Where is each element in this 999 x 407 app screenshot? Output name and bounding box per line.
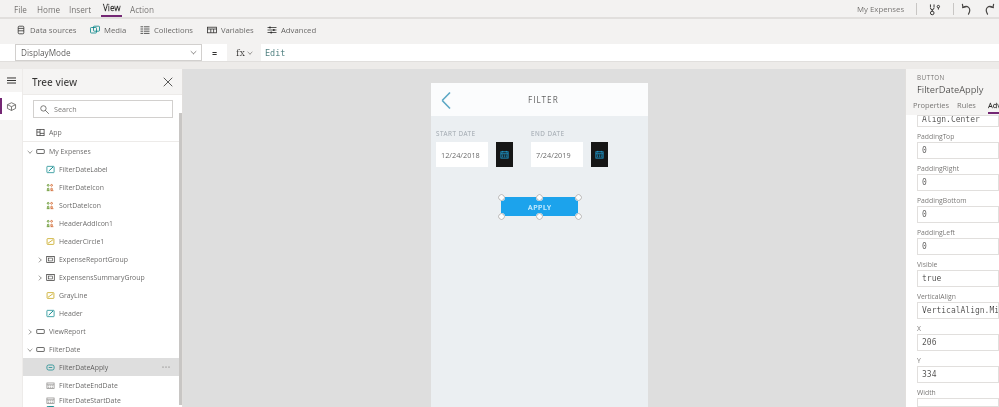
button[interactable]: VerticalAlign.Middle — [917, 302, 999, 319]
staticText: Header — [59, 309, 83, 318]
staticText: VerticalAlign.Middle — [922, 306, 999, 315]
button[interactable]: My Expenses — [853, 4, 909, 15]
button[interactable]: My Expenses — [22, 142, 183, 160]
button[interactable]: Search — [33, 100, 173, 118]
button[interactable]: Undo — [954, 0, 979, 18]
button[interactable]: Properties — [913, 100, 957, 114]
button[interactable]: App — [22, 123, 183, 141]
staticText: PaddingBottom — [917, 196, 967, 205]
button[interactable]: App checker — [917, 0, 953, 18]
staticText: 0 — [922, 178, 927, 187]
staticText: Media — [104, 25, 127, 35]
staticText: Adv — [988, 100, 999, 110]
button[interactable]: Header — [22, 304, 183, 322]
button[interactable]: Action — [126, 0, 159, 18]
staticText: 12/24/2018 — [441, 150, 480, 160]
button[interactable]: FilterDateEndDate — [22, 376, 183, 394]
staticText: HeaderAddIcon1 — [59, 219, 114, 228]
staticText: 0 — [922, 242, 927, 251]
staticText: Width — [917, 388, 936, 397]
button[interactable]: 12/24/2018 — [436, 142, 488, 167]
staticText: FilterDate — [49, 345, 81, 354]
staticText: Tree view — [32, 75, 78, 89]
button[interactable]: ViewReport — [22, 322, 183, 340]
button[interactable]: Tree view — [0, 92, 22, 120]
staticText: FilterDateEndDate — [59, 381, 118, 390]
staticText: APPLY — [528, 202, 552, 212]
staticText: Align.Center — [922, 115, 980, 124]
staticText: 334 — [922, 370, 937, 379]
button[interactable]: FilterDateIcon — [22, 178, 183, 196]
button[interactable]: Adv — [988, 100, 999, 114]
button[interactable]: 0 — [917, 174, 999, 191]
staticText: Insert — [69, 4, 92, 15]
button[interactable]: Collections — [140, 18, 207, 41]
staticText: HeaderCircle1 — [59, 237, 105, 246]
staticText: Edit — [265, 48, 286, 58]
button[interactable]: Advanced — [267, 18, 330, 41]
staticText: ExpenseReportGroup — [59, 255, 128, 264]
button[interactable]: FilterDateLabel — [22, 160, 183, 178]
button[interactable]: ExpensensSummaryGroup — [22, 268, 183, 286]
button[interactable] — [917, 398, 999, 407]
staticText: File — [14, 4, 27, 15]
button[interactable]: Function — [227, 44, 261, 61]
staticText: GrayLine — [59, 291, 88, 300]
staticText: FILTER — [528, 94, 559, 105]
button[interactable]: APPLY — [501, 197, 578, 216]
button[interactable]: 0 — [917, 238, 999, 255]
button[interactable]: Pick date — [591, 142, 608, 167]
button[interactable]: 334 — [917, 366, 999, 383]
staticText: X — [917, 324, 921, 333]
staticText: = — [212, 47, 218, 59]
staticText: View — [103, 2, 121, 13]
staticText: Advanced — [281, 25, 317, 35]
staticText: My Expenses — [857, 4, 905, 15]
button[interactable]: 0 — [917, 206, 999, 223]
button[interactable]: FilterDateApply — [22, 358, 183, 376]
button[interactable]: Redo — [979, 0, 999, 18]
staticText: FilterDateApply — [917, 83, 984, 96]
button[interactable]: File — [9, 0, 32, 18]
button[interactable]: FilterDateStartDate — [22, 394, 183, 407]
button[interactable]: 0 — [917, 142, 999, 159]
button[interactable]: FilterDate — [22, 340, 183, 358]
button[interactable]: GrayLine — [22, 286, 183, 304]
staticText: ExpensensSummaryGroup — [59, 273, 145, 282]
staticText: Y — [917, 356, 921, 365]
button[interactable]: true — [917, 270, 999, 287]
staticText: 0 — [922, 146, 927, 155]
button[interactable]: Insert — [65, 0, 96, 18]
button[interactable]: 206 — [917, 334, 999, 351]
button[interactable]: View — [96, 0, 126, 18]
button[interactable]: Pick date — [496, 142, 513, 167]
button[interactable]: SortDateIcon — [22, 196, 183, 214]
staticText: ViewReport — [49, 327, 86, 336]
button[interactable]: Back — [435, 89, 457, 111]
button[interactable]: 7/24/2019 — [531, 142, 583, 167]
button[interactable]: Rules — [957, 100, 988, 114]
staticText: FilterDateStartDate — [59, 396, 121, 405]
button[interactable]: ExpenseReportGroup — [22, 250, 183, 268]
button[interactable]: Home — [32, 0, 65, 18]
button[interactable]: More options — [159, 360, 173, 374]
staticText: Search — [54, 104, 77, 114]
staticText: Properties — [913, 100, 950, 110]
staticText: My Expenses — [49, 147, 91, 156]
staticText: 206 — [922, 338, 937, 347]
button[interactable]: Close — [157, 71, 179, 93]
staticText: Variables — [221, 25, 254, 35]
button[interactable]: Media — [90, 18, 140, 41]
staticText: Visible — [917, 260, 938, 269]
button[interactable]: DisplayMode — [15, 44, 202, 61]
button[interactable]: Variables — [207, 18, 267, 41]
staticText: START DATE — [436, 129, 476, 138]
staticText: PaddingTop — [917, 132, 955, 141]
button[interactable]: Data sources — [16, 18, 90, 41]
staticText: 0 — [922, 210, 927, 219]
button[interactable]: Menu — [0, 69, 22, 92]
staticText: Home — [37, 4, 61, 15]
button[interactable]: HeaderCircle1 — [22, 232, 183, 250]
staticText: FilterDateLabel — [59, 165, 108, 174]
button[interactable]: HeaderAddIcon1 — [22, 214, 183, 232]
